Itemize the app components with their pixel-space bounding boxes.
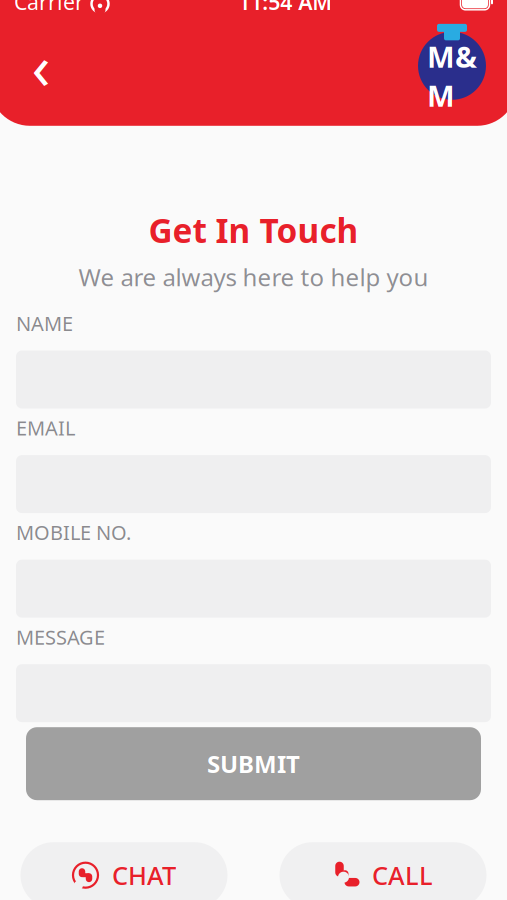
staticText: MESSAGE bbox=[16, 624, 105, 650]
staticText: We are always here to help you bbox=[78, 261, 428, 293]
button[interactable]: CALL bbox=[279, 842, 486, 900]
button[interactable]: CHAT bbox=[20, 842, 227, 900]
staticText: M&M bbox=[427, 37, 477, 115]
staticText: NAME bbox=[16, 310, 73, 336]
staticText: EMAIL bbox=[16, 414, 75, 441]
staticText: CALL bbox=[372, 858, 433, 892]
button[interactable]: Back bbox=[14, 39, 68, 93]
staticText: ‹ bbox=[31, 25, 50, 106]
staticText: 11:54 AM bbox=[238, 0, 332, 16]
staticText: CHAT bbox=[112, 858, 176, 892]
button[interactable]: SUBMIT bbox=[26, 727, 481, 800]
staticText: SUBMIT bbox=[207, 748, 300, 780]
staticText: MOBILE NO. bbox=[16, 519, 131, 546]
staticText: Get In Touch bbox=[148, 208, 358, 252]
staticText: Carrier bbox=[14, 0, 84, 16]
